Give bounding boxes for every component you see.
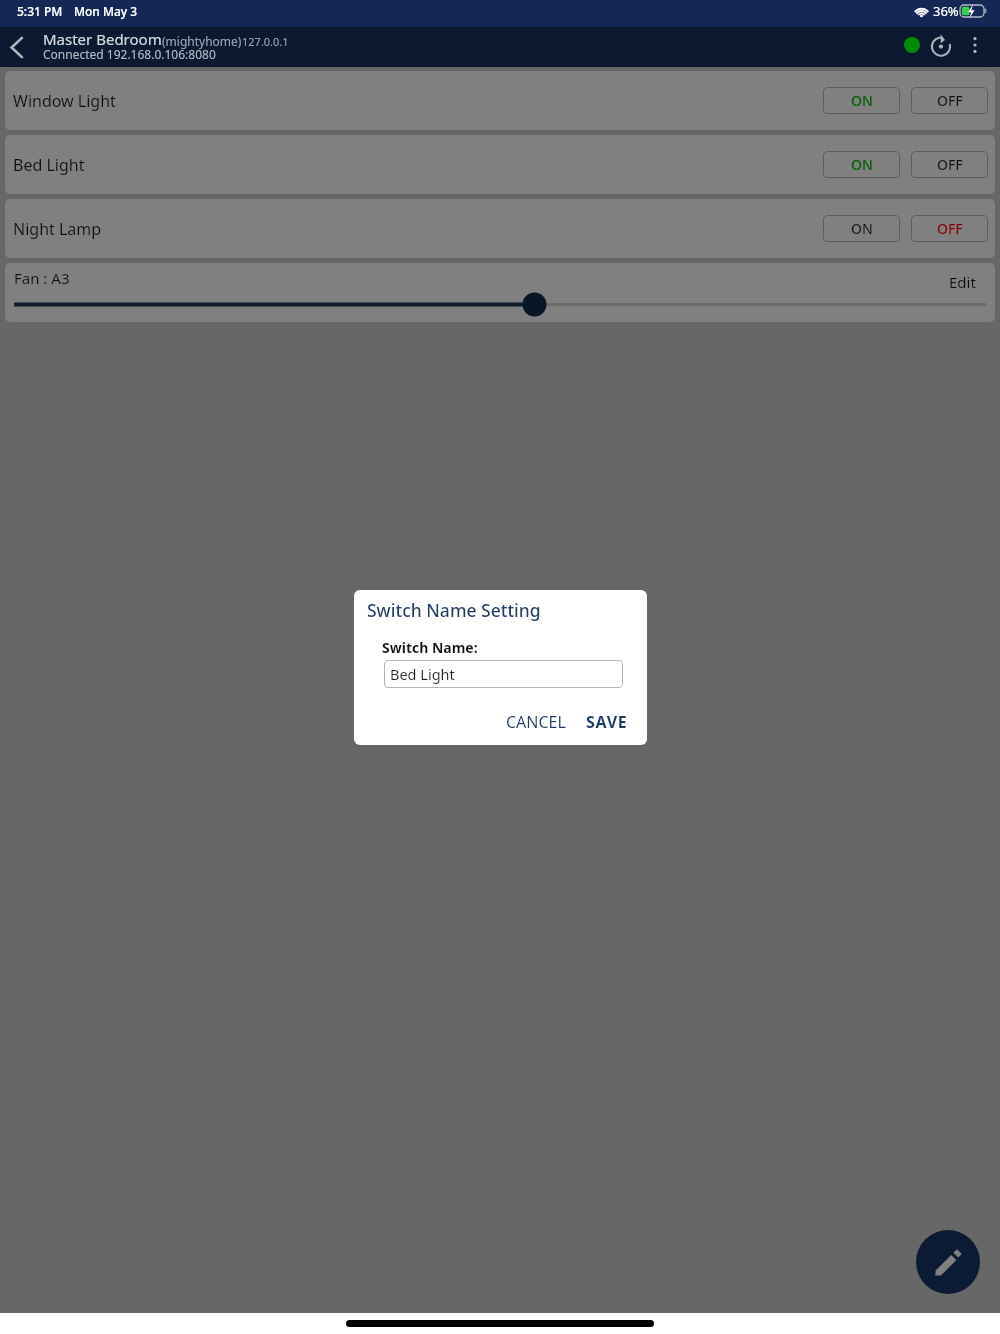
staticText: Night Lamp — [13, 218, 102, 240]
button[interactable]: CANCEL — [503, 708, 569, 736]
staticText: OFF — [937, 155, 963, 174]
staticText: Edit — [949, 272, 976, 292]
staticText: OFF — [937, 219, 963, 238]
staticText: Bed Light — [390, 664, 455, 684]
button[interactable]: ON — [823, 151, 900, 178]
button[interactable]: SAVE — [583, 708, 631, 736]
button[interactable]: OFF — [911, 215, 988, 242]
button[interactable]: ON — [823, 87, 900, 114]
button[interactable]: Refresh — [926, 30, 956, 60]
button[interactable] — [5, 288, 995, 322]
staticText: ON — [851, 155, 873, 174]
button[interactable]: More options — [960, 30, 990, 60]
staticText: (mightyhome) — [162, 33, 242, 49]
staticText: ON — [851, 219, 873, 238]
button[interactable]: Bed Light — [5, 135, 995, 194]
staticText: Master Bedroom — [43, 29, 162, 49]
staticText: Bed Light — [13, 154, 85, 176]
button[interactable]: ON — [823, 215, 900, 242]
staticText: ON — [851, 91, 873, 110]
button[interactable]: Back — [0, 31, 33, 64]
staticText: SAVE — [586, 711, 628, 733]
button[interactable]: Window Light — [5, 71, 995, 130]
staticText: Window Light — [13, 90, 116, 112]
staticText: CANCEL — [506, 711, 566, 733]
staticText: 36% — [933, 2, 959, 20]
staticText: OFF — [937, 91, 963, 110]
staticText: Mon May 3 — [74, 3, 138, 19]
staticText: Switch Name: — [382, 638, 478, 657]
button[interactable]: Bed Light — [384, 660, 623, 688]
staticText: 127.0.0.1 — [242, 34, 289, 49]
button[interactable]: OFF — [911, 151, 988, 178]
staticText: Fan : A3 — [14, 268, 70, 288]
staticText: Connected 192.168.0.106:8080 — [43, 46, 216, 62]
button[interactable]: OFF — [911, 87, 988, 114]
button[interactable]: Edit — [949, 272, 976, 292]
staticText: Switch Name Setting — [367, 598, 541, 622]
button[interactable]: Edit — [916, 1230, 980, 1294]
button[interactable]: Night Lamp — [5, 199, 995, 258]
staticText: 5:31 PM — [17, 3, 63, 19]
